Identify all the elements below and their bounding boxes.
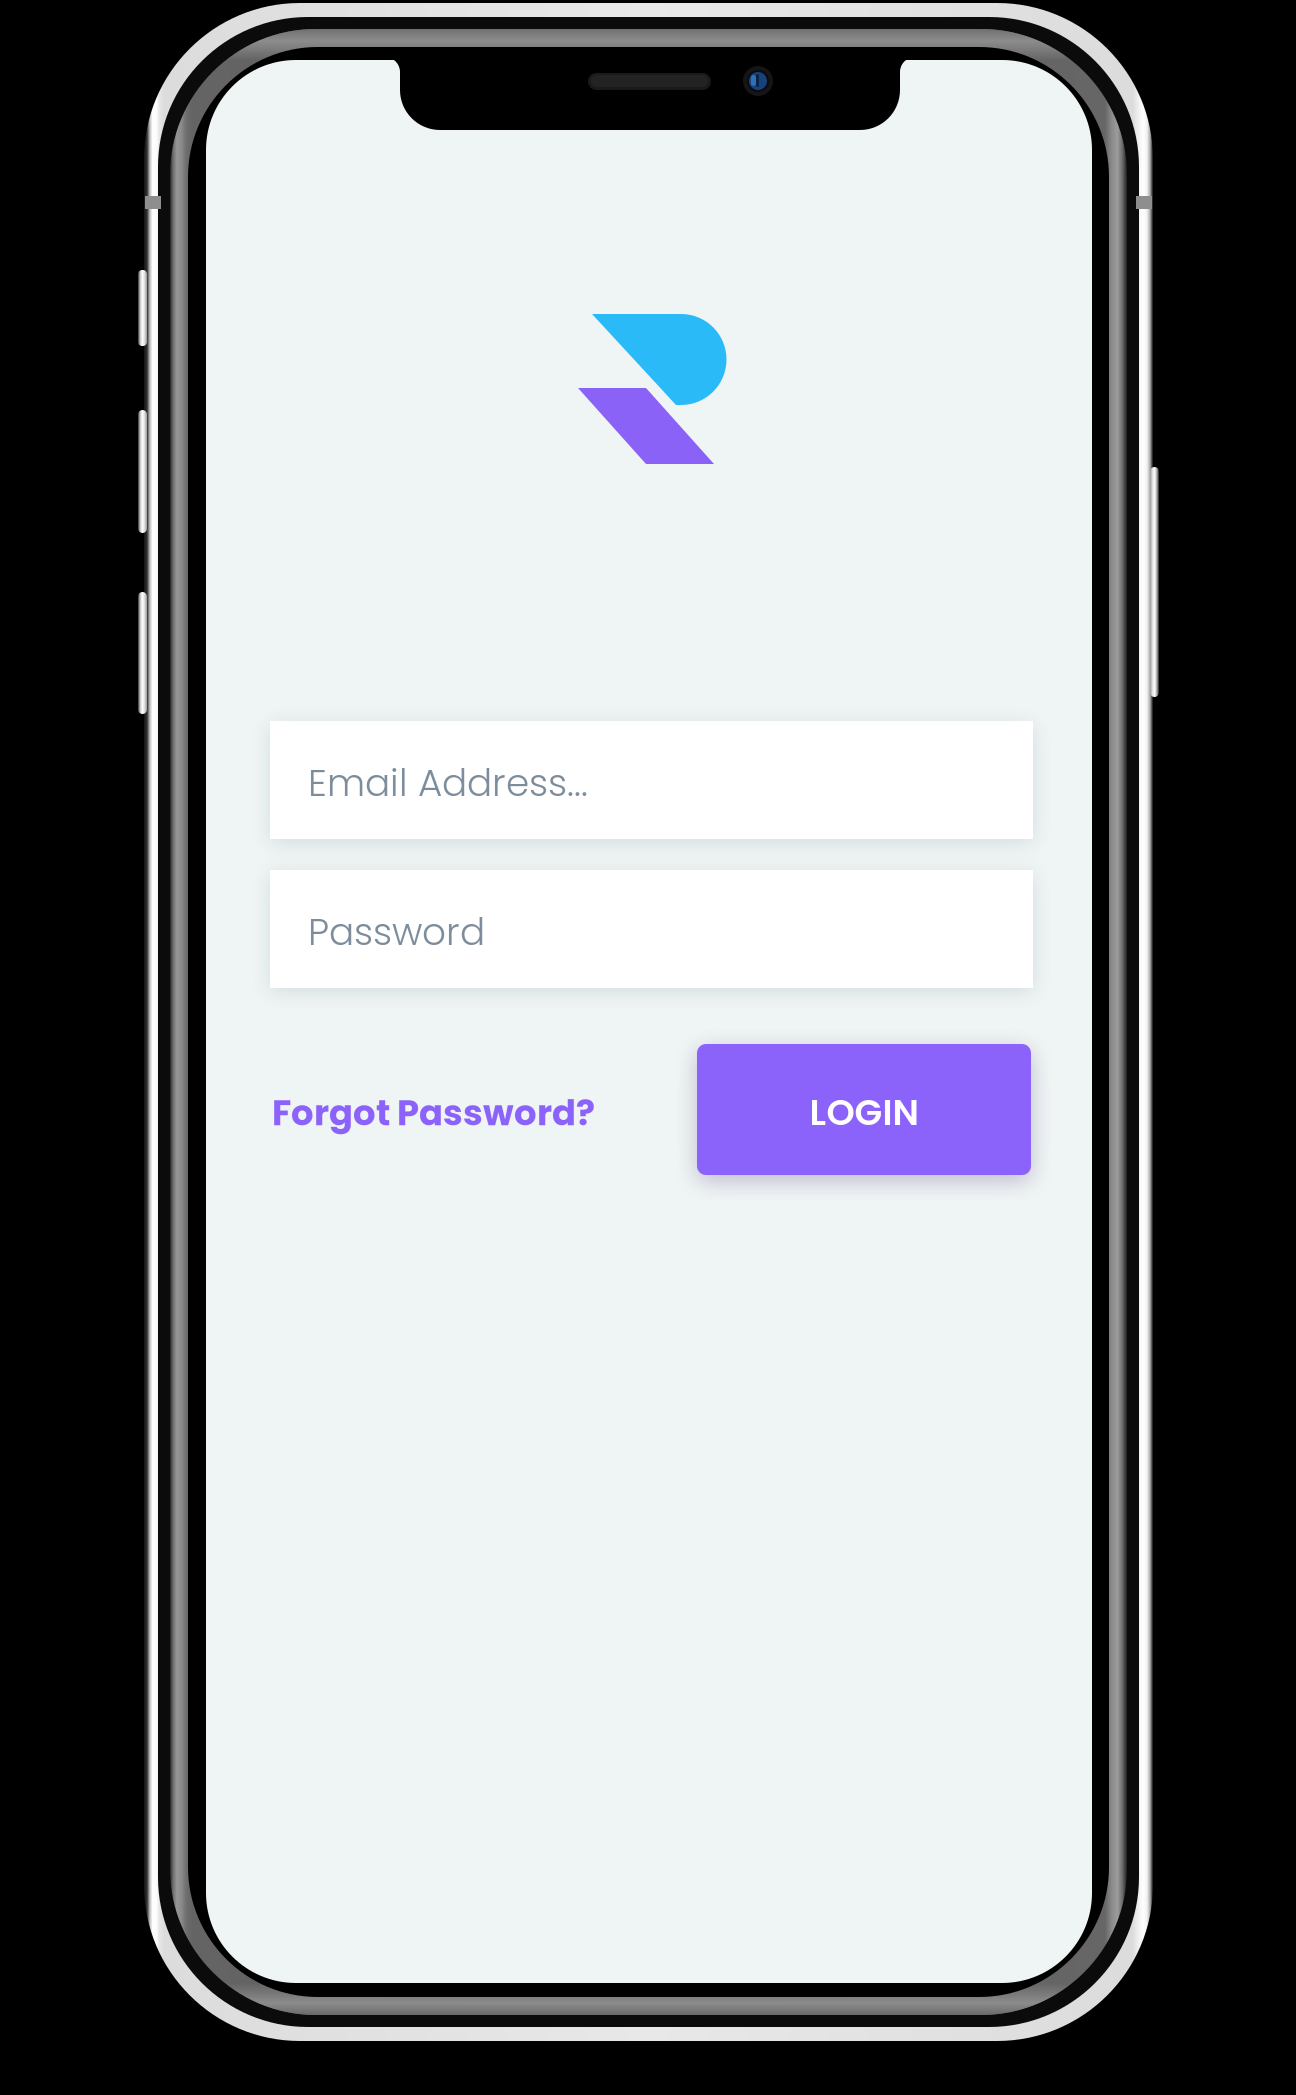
button[interactable]: LOGIN bbox=[697, 1044, 1031, 1175]
staticText: Forgot Password? bbox=[272, 1088, 595, 1138]
staticText: Email Address... bbox=[308, 757, 588, 809]
staticText: Password bbox=[308, 906, 485, 958]
staticText: LOGIN bbox=[809, 1087, 918, 1138]
button[interactable]: Password bbox=[270, 870, 1033, 988]
button[interactable]: Email Address... bbox=[270, 721, 1033, 839]
button[interactable]: Forgot Password? bbox=[272, 1083, 602, 1143]
